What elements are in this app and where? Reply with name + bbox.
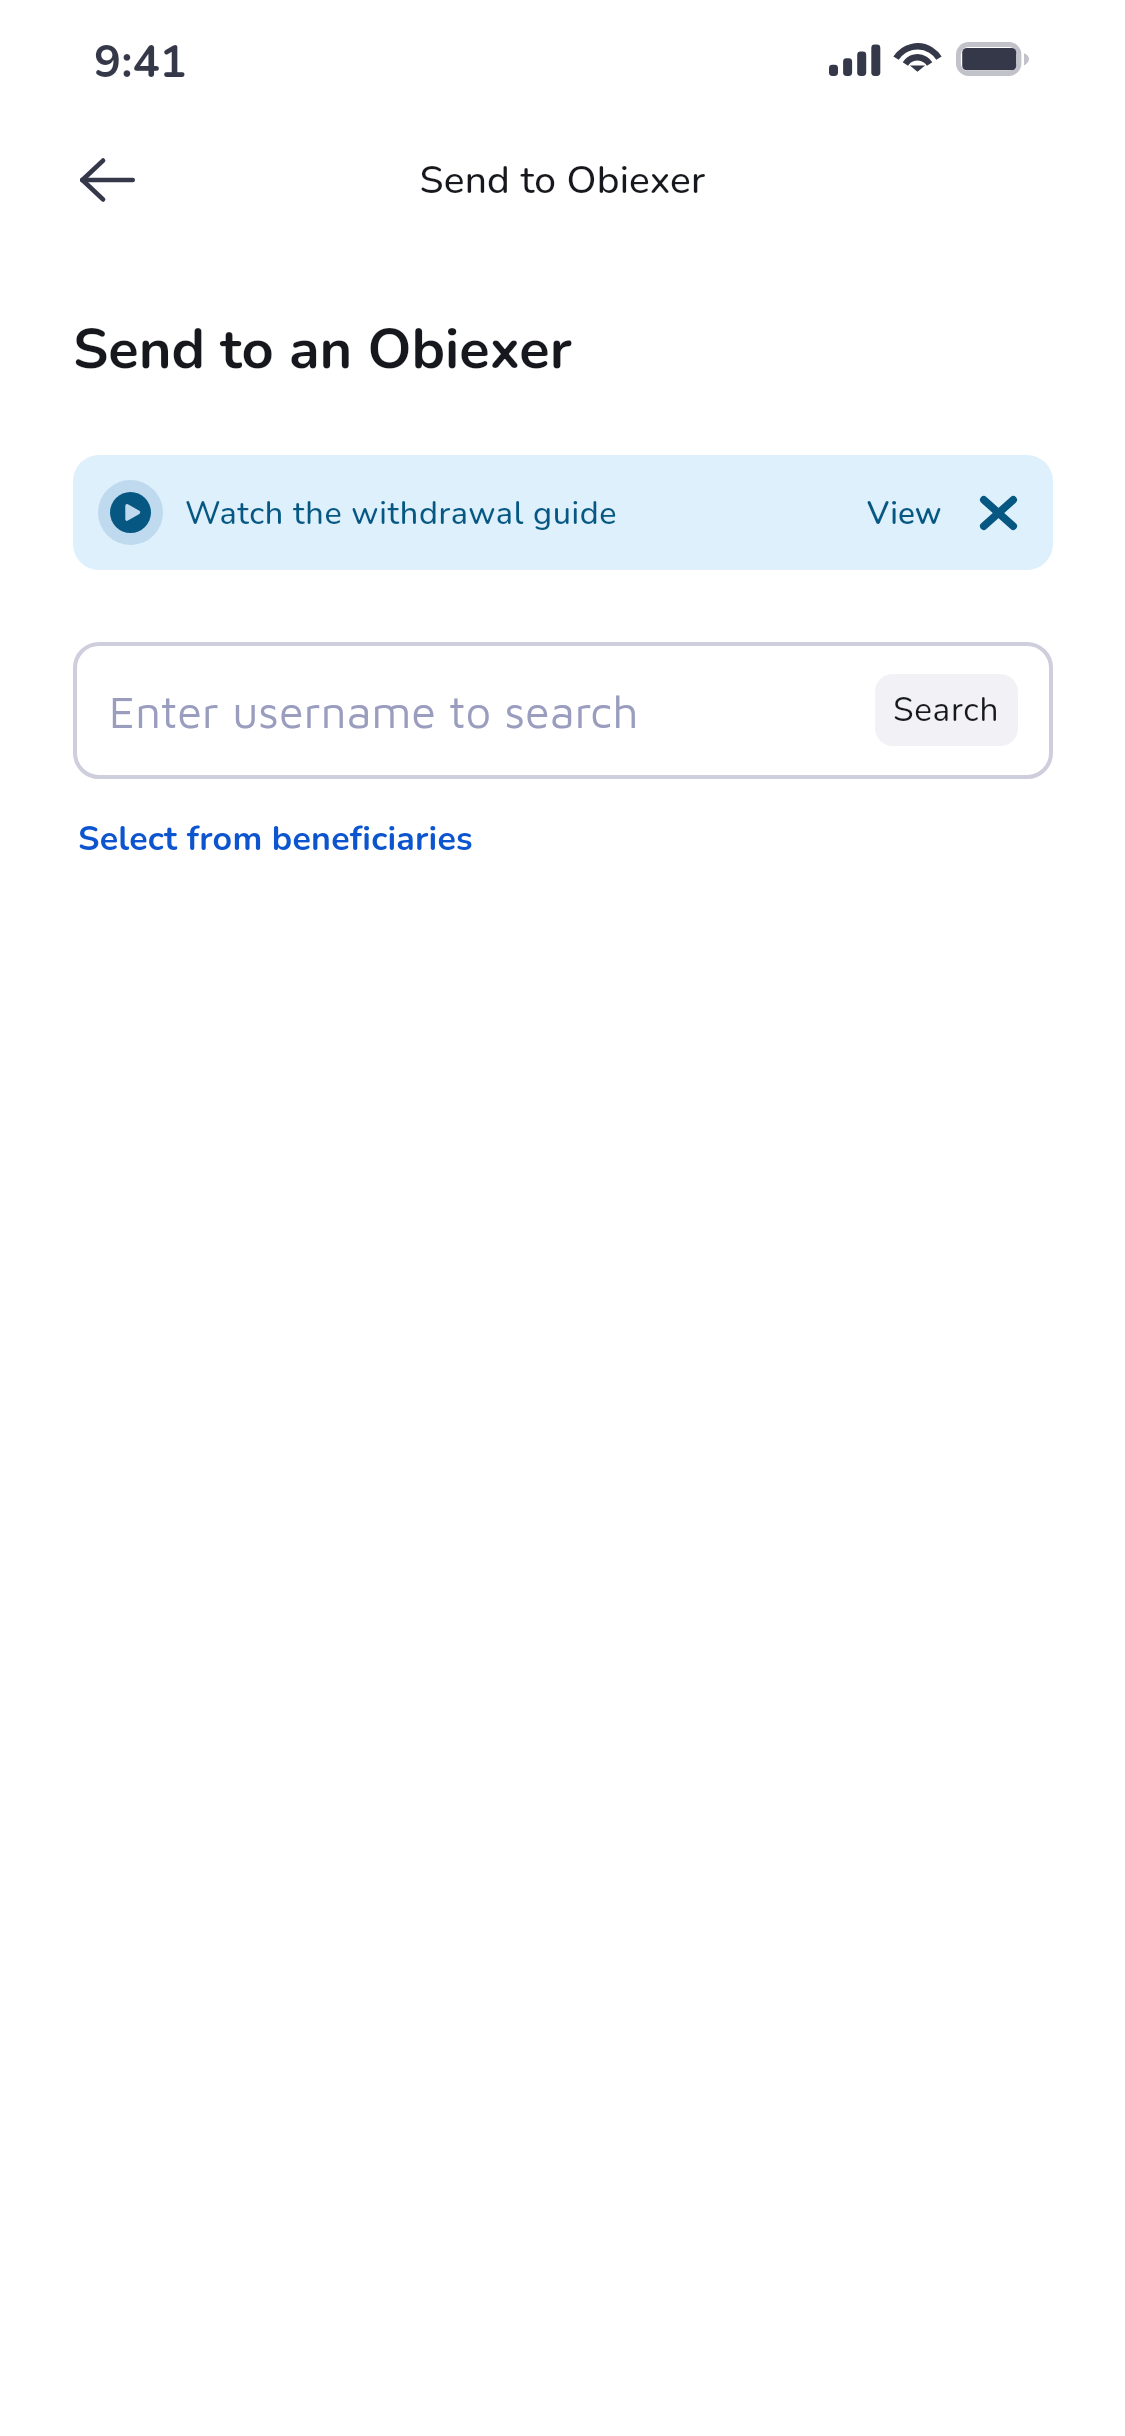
- button[interactable]: Close: [970, 484, 1027, 541]
- staticText: 9:41: [94, 31, 187, 93]
- staticText: Search: [893, 687, 1000, 732]
- button[interactable]: Watch the withdrawal guide: [73, 455, 1053, 570]
- button[interactable]: Search: [875, 674, 1018, 746]
- button[interactable]: Select from beneficiaries: [72, 810, 479, 868]
- staticText: Enter username to search: [109, 684, 639, 737]
- staticText: Send to an Obiexer: [73, 311, 572, 387]
- staticText: Select from beneficiaries: [78, 816, 473, 862]
- staticText: Send to Obiexer: [0, 154, 1125, 207]
- button[interactable]: View: [867, 478, 942, 548]
- button[interactable]: Back: [58, 131, 156, 229]
- staticText: View: [867, 492, 942, 535]
- staticText: Watch the withdrawal guide: [185, 491, 618, 535]
